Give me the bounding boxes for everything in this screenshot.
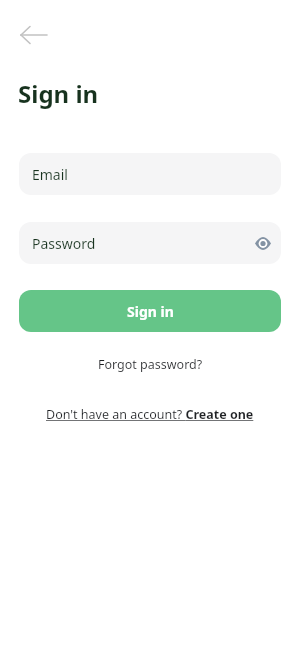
button[interactable]: [249, 229, 277, 257]
button[interactable]: [12, 18, 56, 52]
staticText: Sign in: [18, 77, 99, 110]
staticText: Don't have an account? Create one: [46, 406, 254, 423]
button[interactable]: Forgot password?: [90, 352, 211, 377]
staticText: Password: [32, 234, 96, 253]
staticText: Sign in: [127, 302, 174, 321]
staticText: Email: [32, 165, 68, 184]
staticText: Forgot password?: [98, 356, 203, 373]
button[interactable]: Password: [19, 222, 281, 264]
button[interactable]: Sign in: [19, 290, 281, 332]
button[interactable]: Email: [19, 153, 281, 195]
button[interactable]: Don't have an account? Create one: [38, 402, 262, 427]
